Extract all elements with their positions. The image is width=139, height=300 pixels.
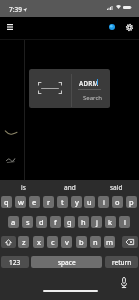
button[interactable]: u	[84, 196, 95, 208]
staticText: t	[61, 197, 64, 207]
button[interactable]: and	[47, 180, 93, 195]
button[interactable]: w	[15, 196, 26, 208]
button[interactable]: v	[61, 236, 72, 248]
staticText: e	[32, 197, 37, 207]
staticText: k	[108, 217, 113, 227]
staticText: o	[115, 197, 120, 207]
button[interactable]: k	[105, 216, 116, 228]
button[interactable]: Settings	[120, 18, 138, 36]
staticText: return	[112, 258, 132, 267]
button[interactable]: d	[36, 216, 47, 228]
button[interactable]: Dictation	[116, 275, 131, 290]
button[interactable]: i	[98, 196, 109, 208]
button[interactable]: l	[119, 216, 130, 228]
button[interactable]: o	[112, 196, 123, 208]
staticText: g	[67, 217, 72, 227]
staticText: w	[18, 197, 24, 207]
button[interactable]: space	[31, 256, 102, 268]
staticText: b	[79, 237, 84, 247]
staticText: and	[64, 183, 76, 192]
button[interactable]: q	[1, 196, 12, 208]
staticText: h	[81, 217, 86, 227]
staticText: r	[47, 197, 51, 207]
button[interactable]: n	[90, 236, 101, 248]
button[interactable]: h	[78, 216, 89, 228]
button[interactable]: b	[76, 236, 87, 248]
button[interactable]: p	[126, 196, 137, 208]
button[interactable]: c	[47, 236, 58, 248]
staticText: Search	[83, 94, 102, 102]
button[interactable]: r	[43, 196, 54, 208]
staticText: ADRM	[79, 79, 99, 88]
staticText: i	[103, 197, 105, 207]
button[interactable]: s	[22, 216, 33, 228]
button[interactable]: Backspace	[122, 236, 138, 248]
button[interactable]: 123	[1, 256, 29, 268]
staticText: is	[21, 183, 26, 192]
staticText: s	[26, 217, 30, 227]
staticText: c	[51, 237, 55, 247]
staticText: m	[106, 237, 114, 247]
button[interactable]: e	[29, 196, 40, 208]
button[interactable]: g	[64, 216, 75, 228]
button[interactable]: Account	[103, 18, 121, 36]
button[interactable]: is	[0, 180, 47, 195]
button[interactable]: m	[104, 236, 115, 248]
button[interactable]: a	[8, 216, 19, 228]
staticText: u	[87, 197, 92, 207]
button[interactable]: x	[33, 236, 44, 248]
button[interactable]: t	[57, 196, 68, 208]
staticText: f	[54, 217, 57, 227]
staticText: p	[129, 197, 134, 207]
staticText: y	[75, 197, 79, 207]
staticText: 7:39	[9, 5, 22, 14]
button[interactable]: j	[91, 216, 102, 228]
staticText: said	[110, 183, 123, 192]
button[interactable]: ADRM	[29, 69, 110, 108]
staticText: d	[39, 217, 44, 227]
staticText: z	[22, 237, 26, 247]
staticText: a	[11, 217, 16, 227]
button[interactable]: said	[93, 180, 139, 195]
staticText: 123	[9, 258, 21, 267]
staticText: j	[96, 217, 98, 227]
button[interactable]: f	[50, 216, 61, 228]
button[interactable]: Navigation menu	[1, 18, 19, 36]
staticText: q	[4, 197, 9, 207]
staticText: l	[124, 217, 126, 227]
button[interactable]: z	[18, 236, 29, 248]
button[interactable]: y	[71, 196, 82, 208]
button[interactable]: return	[105, 256, 138, 268]
staticText: x	[37, 237, 41, 247]
staticText: space	[58, 258, 76, 267]
staticText: v	[65, 237, 69, 247]
button[interactable]: Shift	[1, 236, 16, 248]
staticText: n	[93, 237, 98, 247]
